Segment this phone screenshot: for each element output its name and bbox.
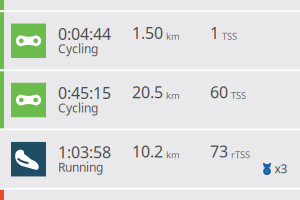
staticText: 60 [210,81,228,103]
staticText: Cycling [58,41,98,57]
staticText: 1 [210,22,219,43]
staticText: rTSS [231,148,250,161]
staticText: km [166,148,180,161]
staticText: x3 [274,161,287,176]
staticText: 1:03:58 [58,141,111,163]
staticText: 20.5 [132,81,163,103]
staticText: TSS [231,89,246,102]
button[interactable]: 1:03:58 [0,131,300,188]
staticText: km [166,89,180,102]
staticText: 0:04:44 [58,23,111,44]
staticText: Running [58,159,103,175]
button[interactable]: 0:45:15 [0,71,300,129]
staticText: TSS [222,30,237,42]
button[interactable]: 0:04:44 [0,12,300,69]
staticText: km [166,30,180,42]
staticText: 0:45:15 [58,82,111,103]
staticText: 73 [210,141,228,162]
staticText: 1.50 [132,22,163,43]
staticText: 10.2 [132,141,163,162]
staticText: Cycling [58,100,98,116]
